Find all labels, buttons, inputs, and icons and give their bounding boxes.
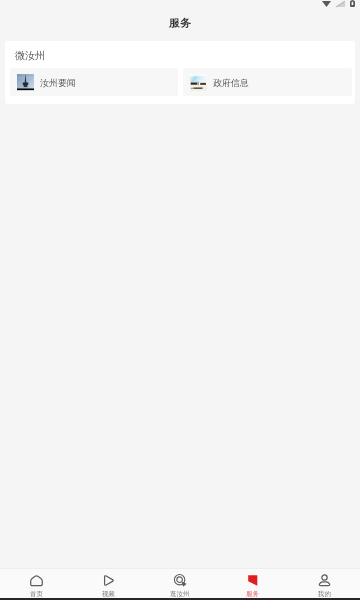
button[interactable]: 我的 [288,569,360,598]
staticText: 政府信息 [213,77,249,88]
button[interactable]: 服务 [216,569,288,598]
staticText: 逛汝州 [170,590,190,598]
staticText: 首页 [30,590,43,598]
button[interactable]: 视频 [72,569,144,598]
staticText: 服务 [246,590,259,598]
button[interactable]: 政府信息 [183,68,352,96]
staticText: 微汝州 [15,49,45,62]
staticText: 汝州要闻 [40,77,76,88]
staticText: 视频 [102,590,115,598]
button[interactable]: 首页 [0,569,72,598]
button[interactable]: 逛汝州 [144,569,216,598]
staticText: 服务 [169,16,191,30]
staticText: 我的 [318,590,331,598]
button[interactable]: 汝州要闻 [10,68,178,96]
